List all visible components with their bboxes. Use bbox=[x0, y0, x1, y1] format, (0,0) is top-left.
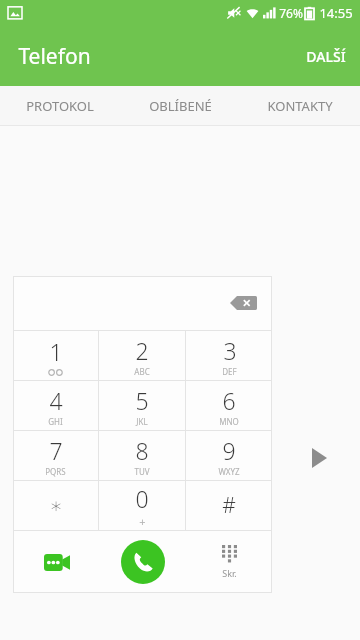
button[interactable]: 0 bbox=[99, 481, 185, 530]
button[interactable]: PROTOKOL bbox=[0, 86, 120, 126]
staticText: 5 bbox=[135, 385, 149, 416]
staticText: 76% bbox=[279, 5, 303, 21]
staticText: 0 bbox=[135, 483, 149, 514]
staticText: Telefon bbox=[18, 42, 91, 71]
button[interactable]: 2 bbox=[99, 331, 185, 380]
button[interactable]: Telefon bbox=[0, 34, 99, 79]
button[interactable]: ∗ bbox=[13, 481, 98, 530]
staticText: 9 bbox=[222, 435, 236, 466]
staticText: 3 bbox=[223, 335, 237, 366]
staticText: JKL bbox=[136, 416, 148, 427]
staticText: Skr. bbox=[222, 567, 237, 579]
button[interactable]: 6 bbox=[186, 381, 272, 430]
button[interactable]: DALŠÍ bbox=[292, 35, 360, 78]
staticText: GHI bbox=[48, 416, 63, 427]
button[interactable]: 9 bbox=[186, 431, 272, 480]
staticText: KONTAKTY bbox=[267, 97, 333, 115]
staticText: DEF bbox=[222, 366, 237, 377]
staticText: PROTOKOL bbox=[26, 97, 94, 115]
staticText: 6 bbox=[222, 385, 236, 416]
staticText: PQRS bbox=[45, 466, 66, 477]
staticText: 14:55 bbox=[319, 4, 353, 22]
button[interactable]: Hide keypad bbox=[186, 531, 272, 593]
staticText: ABC bbox=[134, 366, 150, 377]
staticText: 2 bbox=[135, 335, 149, 366]
button[interactable]: Call bbox=[100, 531, 186, 593]
button[interactable]: 3 bbox=[186, 331, 272, 380]
staticText: TUV bbox=[134, 466, 150, 477]
staticText: + bbox=[139, 514, 146, 529]
button[interactable]: 4 bbox=[13, 381, 98, 430]
staticText: ∗ bbox=[49, 494, 63, 518]
button[interactable]: 7 bbox=[13, 431, 98, 480]
staticText: 1 bbox=[49, 336, 63, 367]
button[interactable]: KONTAKTY bbox=[240, 86, 360, 126]
staticText: 7 bbox=[49, 435, 63, 466]
staticText: # bbox=[222, 491, 236, 520]
staticText: DALŠÍ bbox=[306, 47, 346, 66]
staticText: 8 bbox=[135, 435, 149, 466]
button[interactable]: 5 bbox=[99, 381, 185, 430]
button[interactable]: # bbox=[186, 481, 272, 530]
button[interactable]: Backspace bbox=[226, 290, 260, 316]
button[interactable]: 1 bbox=[13, 331, 98, 380]
staticText: WXYZ bbox=[218, 466, 240, 477]
staticText: 4 bbox=[49, 385, 63, 416]
button[interactable]: Expand keypad bbox=[303, 442, 335, 474]
button[interactable]: 8 bbox=[99, 431, 185, 480]
button[interactable]: Video call bbox=[13, 531, 100, 593]
staticText: OBLÍBENÉ bbox=[149, 97, 212, 115]
staticText: MNO bbox=[219, 416, 239, 427]
button[interactable]: OBLÍBENÉ bbox=[120, 86, 240, 126]
